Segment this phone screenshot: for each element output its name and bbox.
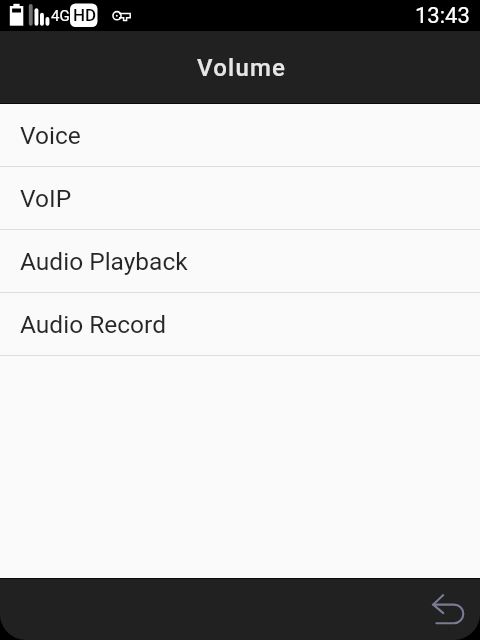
staticText: VoIP [20,184,72,213]
button[interactable]: Audio Playback [0,230,480,293]
button[interactable]: Voice [0,104,480,167]
staticText: 13:43 [415,3,470,29]
staticText: Audio Playback [20,247,188,276]
staticText: 4G [51,7,70,25]
staticText: Voice [20,121,81,150]
staticText: HD [73,5,97,25]
button[interactable]: Audio Record [0,293,480,356]
staticText: Volume [197,54,287,82]
button[interactable]: VoIP [0,167,480,230]
staticText: Audio Record [20,310,166,339]
button[interactable]: Back [422,583,476,637]
